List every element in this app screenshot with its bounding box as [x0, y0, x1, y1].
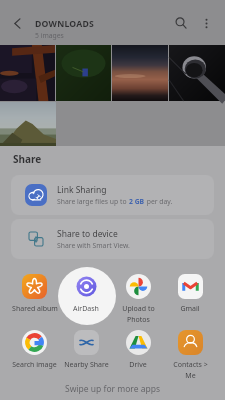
button[interactable]: Back — [6, 12, 28, 34]
button[interactable]: Contacts > Me — [164, 330, 216, 380]
button[interactable]: AirDash — [60, 274, 112, 314]
button[interactable]: Search image — [9, 330, 60, 370]
staticText: Gmail — [180, 304, 200, 314]
staticText: 5 images — [35, 31, 64, 40]
button[interactable]: Nearby Share — [60, 330, 112, 370]
staticText: Upload to Photos — [122, 304, 155, 324]
button[interactable]: Search — [170, 12, 192, 34]
staticText: Link Sharing — [57, 184, 107, 196]
staticText: Share — [13, 152, 42, 166]
button[interactable]: Link Sharing — [11, 175, 214, 215]
staticText: Contacts > Me — [173, 360, 208, 380]
staticText: Shared album — [12, 304, 58, 314]
staticText: Search image — [12, 360, 57, 370]
staticText: DOWNLOADS — [35, 18, 94, 30]
staticText: Swipe up for more apps — [0, 383, 225, 395]
staticText: per day. — [145, 197, 173, 206]
staticText: Share to device — [57, 228, 118, 240]
staticText: AirDash — [73, 304, 99, 314]
button[interactable]: Drive — [112, 330, 164, 370]
button[interactable]: Gmail — [164, 274, 216, 314]
staticText: Share large files up to — [57, 197, 129, 206]
button[interactable]: Shared album — [9, 274, 60, 314]
staticText: Share with Smart View. — [57, 241, 130, 250]
button[interactable]: More options — [195, 12, 217, 34]
staticText: Drive — [129, 360, 147, 370]
staticText: Nearby Share — [64, 360, 109, 370]
staticText: 2 GB — [129, 197, 145, 206]
button[interactable]: Share to device — [11, 219, 214, 259]
button[interactable]: Upload to Photos — [112, 274, 164, 324]
